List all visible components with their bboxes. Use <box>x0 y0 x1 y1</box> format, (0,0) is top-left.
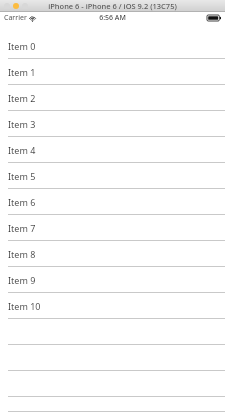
button[interactable]: Item 7 <box>0 215 225 241</box>
button[interactable]: Item 1 <box>0 59 225 85</box>
staticText: Item 0 <box>8 40 36 52</box>
staticText: Item 8 <box>8 248 36 260</box>
button[interactable]: Item 3 <box>0 111 225 137</box>
staticText: Item 2 <box>8 92 36 104</box>
button[interactable]: Item 6 <box>0 189 225 215</box>
button[interactable]: Item 9 <box>0 267 225 293</box>
button[interactable]: Item 8 <box>0 241 225 267</box>
button[interactable]: Minimize <box>13 3 19 9</box>
staticText: Item 4 <box>8 144 36 156</box>
staticText: Carrier <box>4 13 27 23</box>
staticText: Item 9 <box>8 274 36 286</box>
staticText: Item 3 <box>8 118 36 130</box>
staticText: Item 6 <box>8 196 36 208</box>
button[interactable]: Item 0 <box>0 33 225 59</box>
staticText: Item 7 <box>8 222 36 234</box>
button[interactable]: Item 4 <box>0 137 225 163</box>
staticText: Item 10 <box>8 300 41 312</box>
button[interactable]: Item 5 <box>0 163 225 189</box>
staticText: iPhone 6 - iPhone 6 / iOS 9.2 (13C75) <box>0 1 225 11</box>
button[interactable]: Item 10 <box>0 293 225 319</box>
staticText: Item 1 <box>8 66 36 78</box>
button[interactable]: Item 2 <box>0 85 225 111</box>
staticText: Item 5 <box>8 170 36 182</box>
staticText: 6:56 AM <box>0 13 225 23</box>
